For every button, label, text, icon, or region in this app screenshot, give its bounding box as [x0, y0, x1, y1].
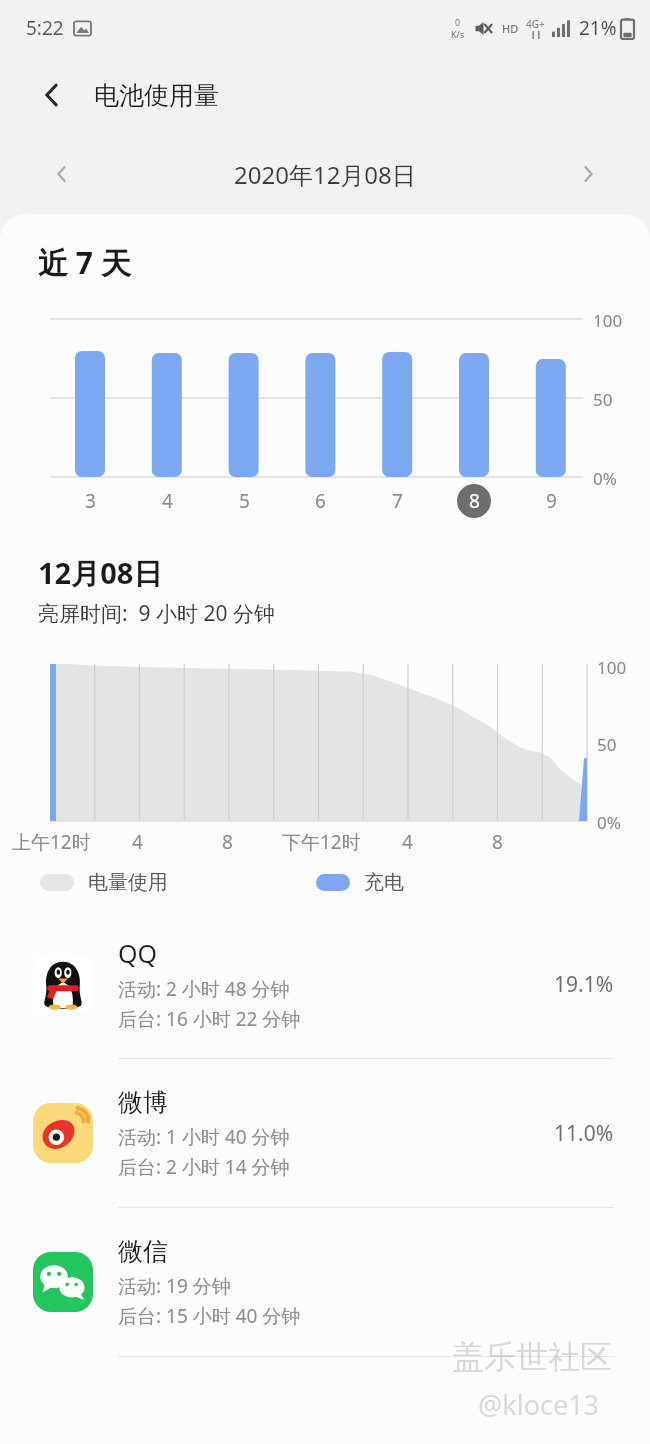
staticText: 5	[239, 488, 250, 514]
staticText: 活动: 1 小时 40 分钟	[118, 1124, 290, 1150]
staticText: 后台: 15 小时 40 分钟	[118, 1303, 301, 1329]
button[interactable]: 微信	[0, 1208, 650, 1356]
staticText: 0%	[593, 467, 617, 490]
staticText: 后台: 16 小时 22 分钟	[118, 1006, 301, 1032]
staticText: 8	[492, 829, 503, 855]
staticText: 盖乐世社区	[452, 1337, 612, 1377]
staticText: 4	[402, 829, 413, 855]
staticText: 8	[469, 488, 480, 514]
staticText: QQ	[118, 936, 158, 970]
staticText: 4G+	[526, 17, 545, 31]
staticText: 上午12时	[12, 829, 91, 855]
button[interactable]: 前一天	[40, 152, 84, 196]
staticText: 微信	[118, 1236, 168, 1267]
staticText: 微博	[118, 1087, 168, 1118]
staticText: 12月08日	[38, 553, 163, 593]
staticText: 3	[85, 488, 96, 514]
staticText: 4	[162, 488, 173, 514]
staticText: 7	[392, 488, 403, 514]
staticText: 活动: 2 小时 48 分钟	[118, 976, 290, 1002]
staticText: 电量使用	[88, 870, 168, 895]
button[interactable]: 返回	[28, 71, 76, 119]
staticText: 活动: 19 分钟	[118, 1273, 231, 1299]
button[interactable]: QQ	[0, 910, 650, 1058]
staticText: K/s	[451, 28, 465, 40]
staticText: 9	[546, 488, 557, 514]
staticText: @kloce13	[478, 1386, 600, 1423]
staticText: 21%	[579, 15, 617, 41]
button[interactable]: 微博	[0, 1059, 650, 1207]
staticText: 后台: 2 小时 14 分钟	[118, 1154, 290, 1180]
staticText: 5:22	[26, 15, 64, 41]
staticText: 100	[593, 309, 623, 332]
staticText: 6	[315, 488, 326, 514]
staticText: 19.1%	[554, 970, 614, 999]
staticText: 50	[597, 733, 617, 756]
staticText: 电池使用量	[94, 80, 219, 111]
staticText: 0	[455, 16, 461, 28]
staticText: 下午12时	[282, 829, 361, 855]
staticText: 2020年12月08日	[234, 158, 416, 191]
staticText: 亮屏时间: 9 小时 20 分钟	[38, 599, 275, 628]
staticText: 11.0%	[554, 1119, 614, 1148]
staticText: 4	[132, 829, 143, 855]
staticText: 100	[597, 656, 627, 679]
staticText: 50	[593, 388, 613, 411]
button[interactable]: 后一天	[566, 152, 610, 196]
staticText: 充电	[364, 870, 404, 895]
staticText: 8	[222, 829, 233, 855]
staticText: 0%	[597, 811, 621, 834]
staticText: HD	[502, 21, 519, 36]
staticText: 近 7 天	[38, 242, 131, 283]
